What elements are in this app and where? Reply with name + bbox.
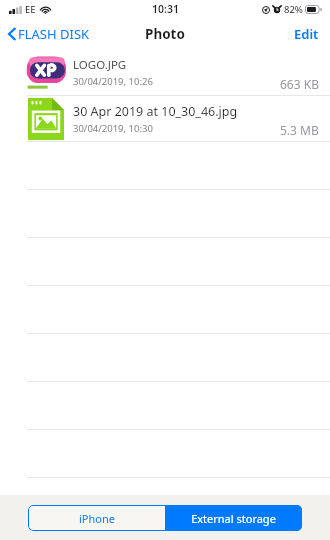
- staticText: External storage: [191, 511, 276, 526]
- button[interactable]: LOGO.JPG thumbnail: [0, 50, 330, 96]
- button[interactable]: iPhone: [28, 505, 165, 531]
- button[interactable]: FLASH DISK: [5, 21, 93, 47]
- other: JPG file icon: [28, 98, 64, 140]
- staticText: 5.3 MB: [280, 122, 319, 138]
- staticText: iPhone: [79, 511, 115, 526]
- button[interactable]: JPG file icon: [0, 96, 330, 142]
- staticText: 30 Apr 2019 at 10_30_46.jpg: [73, 103, 238, 120]
- staticText: Photo: [145, 25, 185, 43]
- staticText: 30/04/2019, 10:30: [73, 122, 153, 135]
- staticText: LOGO.JPG: [73, 57, 127, 73]
- staticText: FLASH DISK: [18, 25, 90, 43]
- staticText: 663 KB: [280, 76, 319, 92]
- button[interactable]: External storage: [165, 505, 302, 531]
- staticText: 82%: [284, 3, 303, 16]
- staticText: EE: [25, 3, 36, 16]
- staticText: 30/04/2019, 10:26: [73, 75, 153, 88]
- staticText: 10:31: [152, 2, 179, 16]
- staticText: Edit: [294, 25, 319, 43]
- button[interactable]: Edit: [289, 21, 324, 47]
- other: LOGO.JPG thumbnail: [26, 55, 66, 91]
